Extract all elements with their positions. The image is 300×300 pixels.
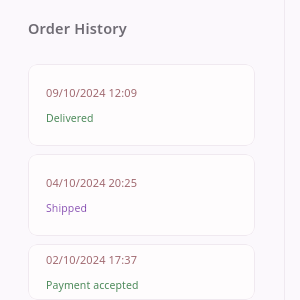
staticText: Shipped	[46, 201, 87, 215]
staticText: Order History	[28, 18, 127, 38]
button[interactable]: 04/10/2024 20:25	[28, 154, 255, 236]
staticText: Delivered	[46, 111, 94, 125]
button[interactable]: 02/10/2024 17:37	[28, 244, 255, 300]
staticText: 09/10/2024 12:09	[46, 85, 138, 100]
staticText: 02/10/2024 17:37	[46, 252, 138, 267]
staticText: Payment accepted	[46, 278, 139, 292]
staticText: 04/10/2024 20:25	[46, 175, 138, 190]
button[interactable]: 09/10/2024 12:09	[28, 64, 255, 146]
